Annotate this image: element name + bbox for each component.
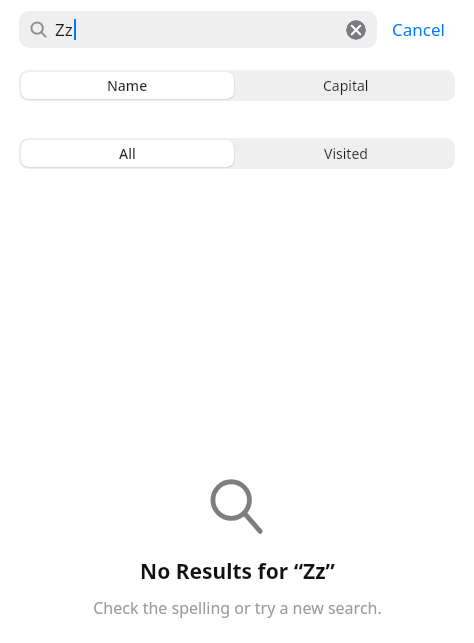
staticText: All bbox=[119, 144, 136, 163]
staticText: Visited bbox=[324, 144, 368, 163]
button[interactable]: Zz bbox=[19, 11, 377, 48]
button[interactable]: Clear text bbox=[346, 20, 366, 40]
staticText: Cancel bbox=[392, 18, 445, 41]
staticText: Capital bbox=[323, 76, 369, 95]
button[interactable]: Name bbox=[21, 72, 234, 99]
staticText: No Results for “Zz” bbox=[140, 557, 335, 586]
staticText: Zz bbox=[55, 18, 73, 41]
button[interactable]: Visited bbox=[236, 138, 455, 169]
button[interactable]: Cancel bbox=[377, 11, 460, 48]
staticText: Name bbox=[107, 76, 148, 95]
button[interactable]: Capital bbox=[236, 70, 455, 101]
staticText: Check the spelling or try a new search. bbox=[93, 597, 382, 619]
button[interactable]: All bbox=[21, 140, 234, 167]
